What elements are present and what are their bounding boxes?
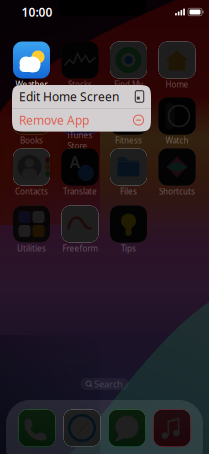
staticText: Remove App <box>19 112 89 128</box>
button[interactable]: Stocks <box>57 41 103 89</box>
button[interactable]: Weather <box>8 41 54 89</box>
staticText: Tips <box>121 243 136 254</box>
button[interactable]: Tips <box>105 205 151 253</box>
staticText: Contacts <box>15 186 48 197</box>
button[interactable]: Remove App <box>12 109 151 132</box>
staticText: Files <box>120 186 137 197</box>
button[interactable]: Edit Home Screen <box>12 85 151 108</box>
button[interactable]: Contacts <box>8 148 54 196</box>
button[interactable]: Books <box>8 97 54 145</box>
button[interactable]: Phone <box>20 411 54 445</box>
staticText: Stocks <box>68 79 92 90</box>
staticText: Watch <box>165 135 188 146</box>
staticText: Search <box>94 378 123 390</box>
staticText: Find My <box>114 79 143 90</box>
button[interactable]: Search <box>80 378 128 390</box>
staticText: Shortcuts <box>159 186 195 197</box>
staticText: Books <box>20 135 43 146</box>
button[interactable]: Find My <box>105 41 151 89</box>
button[interactable]: Messages <box>110 411 144 445</box>
staticText: Translate <box>63 186 97 197</box>
button[interactable]: Files <box>105 148 151 196</box>
button[interactable]: Utilities <box>8 205 54 253</box>
staticText: Freeform <box>62 243 97 254</box>
button[interactable]: A <box>57 148 103 196</box>
staticText: Edit Home Screen <box>19 88 119 104</box>
button[interactable]: Freeform <box>57 205 103 253</box>
button[interactable]: Safari <box>65 411 99 445</box>
staticText: Weather <box>15 79 47 90</box>
staticText: Home <box>165 79 188 90</box>
staticText: Fitness <box>115 135 142 146</box>
staticText: iTunes Store <box>67 130 92 151</box>
staticText: A <box>69 151 80 173</box>
button[interactable]: Shortcuts <box>154 148 200 196</box>
staticText: 10:00 <box>21 4 52 20</box>
button[interactable]: Music <box>155 411 189 445</box>
button[interactable]: iTunes Store <box>57 97 103 145</box>
button[interactable]: Home <box>154 41 200 89</box>
button[interactable]: Watch <box>154 97 200 145</box>
staticText: Utilities <box>17 243 46 254</box>
button[interactable]: Fitness <box>105 97 151 145</box>
